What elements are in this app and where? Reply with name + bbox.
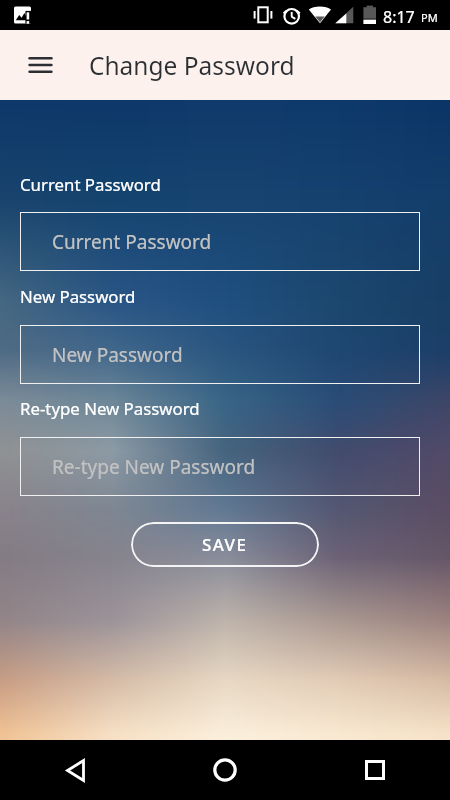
staticText: 8:17 xyxy=(383,6,415,28)
staticText: Re-type New Password xyxy=(52,454,256,480)
button[interactable]: New Password xyxy=(20,325,420,384)
staticText: Current Password xyxy=(52,229,212,255)
staticText: New Password xyxy=(20,285,136,308)
button[interactable]: Recent apps xyxy=(300,740,450,800)
staticText: New Password xyxy=(52,342,183,368)
button[interactable]: Home xyxy=(150,740,300,800)
staticText: Current Password xyxy=(20,173,161,196)
button[interactable]: SAVE xyxy=(131,522,319,567)
staticText: Re-type New Password xyxy=(20,397,200,420)
staticText: Change Password xyxy=(89,49,295,82)
button[interactable]: Back xyxy=(0,740,150,800)
button[interactable]: Current Password xyxy=(20,212,420,271)
staticText: SAVE xyxy=(202,533,248,556)
button[interactable]: Open navigation menu xyxy=(16,41,64,89)
button[interactable]: Re-type New Password xyxy=(20,437,420,496)
staticText: PM xyxy=(421,10,438,25)
